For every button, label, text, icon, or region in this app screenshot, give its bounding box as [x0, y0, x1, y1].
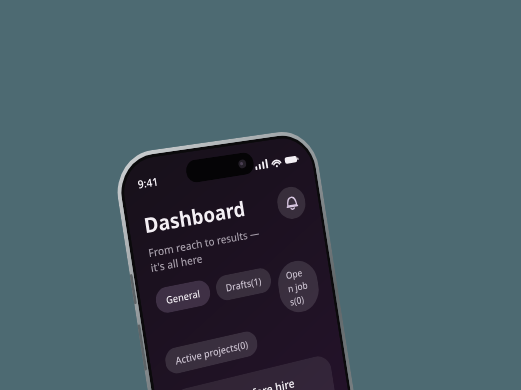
staticText: Open jobs(0): [285, 265, 312, 308]
button[interactable]: Last steps before hire: [170, 353, 346, 390]
button[interactable]: Notifications: [275, 185, 308, 221]
staticText: General: [165, 286, 201, 307]
button[interactable]: Active projects(0): [163, 329, 259, 376]
staticText: Drafts(1): [225, 274, 263, 295]
staticText: Dashboard: [142, 195, 247, 240]
staticText: From reach to results — it's all here: [147, 225, 263, 275]
button[interactable]: Open jobs(0): [275, 257, 322, 316]
staticText: 9:41: [137, 173, 159, 191]
button[interactable]: General: [154, 278, 212, 315]
staticText: Last steps before hire: [184, 375, 296, 390]
button[interactable]: Drafts(1): [214, 266, 273, 302]
staticText: Active projects(0): [174, 337, 249, 368]
